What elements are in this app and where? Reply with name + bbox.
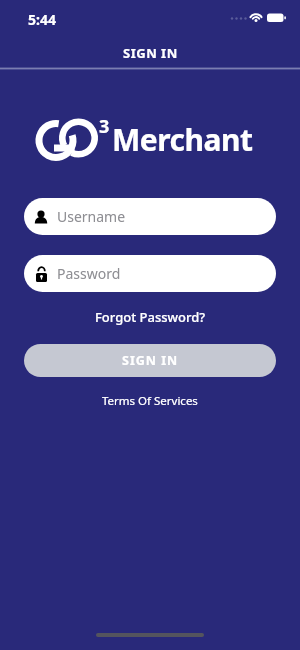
staticText: 5:44 xyxy=(28,10,56,29)
button[interactable]: Password xyxy=(24,255,276,292)
staticText: Username xyxy=(57,207,126,226)
button[interactable]: Username xyxy=(24,198,276,235)
staticText: Password xyxy=(57,264,121,283)
button[interactable]: Forgot Password? xyxy=(0,308,300,326)
staticText: Merchant xyxy=(112,119,253,160)
button[interactable]: SIGN IN xyxy=(24,344,276,377)
staticText: SIGN IN xyxy=(122,352,179,369)
staticText: Terms Of Services xyxy=(102,393,198,409)
staticText: Forgot Password? xyxy=(95,308,206,326)
staticText: SIGN IN xyxy=(123,44,178,62)
button[interactable]: Terms Of Services xyxy=(0,393,300,409)
staticText: 3 xyxy=(99,114,110,139)
